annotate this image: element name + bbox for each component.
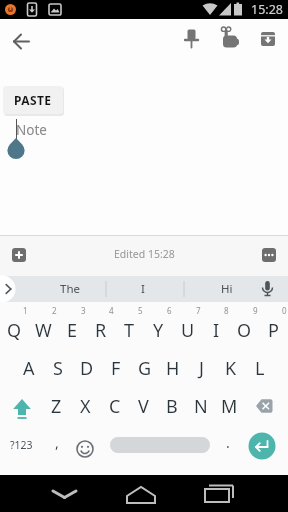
staticText: 15:28 xyxy=(251,1,283,18)
button[interactable] xyxy=(71,426,99,464)
staticText: K xyxy=(225,356,237,381)
button[interactable]: Z xyxy=(42,387,71,425)
button[interactable]: X xyxy=(71,387,100,425)
staticText: X xyxy=(80,394,91,419)
button[interactable]: Hi xyxy=(197,276,257,302)
button[interactable]: J xyxy=(187,349,216,387)
staticText: 9 xyxy=(253,305,258,315)
staticText: Note xyxy=(16,121,47,139)
button[interactable]: The xyxy=(40,276,100,302)
staticText: The xyxy=(60,281,80,297)
button[interactable] xyxy=(117,475,165,512)
staticText: Hi xyxy=(221,281,233,297)
staticText: A xyxy=(23,356,35,381)
button[interactable] xyxy=(110,437,210,453)
staticText: 8 xyxy=(224,305,229,315)
staticText: U xyxy=(181,318,195,343)
staticText: T xyxy=(124,318,135,343)
button[interactable] xyxy=(254,25,282,53)
staticText: Y xyxy=(153,318,164,343)
button[interactable]: G xyxy=(130,349,159,387)
staticText: I xyxy=(213,318,220,343)
button[interactable]: Q xyxy=(0,311,29,349)
staticText: N xyxy=(194,394,208,419)
staticText: C xyxy=(109,394,121,419)
button[interactable]: S xyxy=(43,349,72,387)
staticText: V xyxy=(138,394,149,419)
button[interactable]: M xyxy=(215,387,244,425)
button[interactable] xyxy=(262,248,276,262)
button[interactable] xyxy=(0,387,43,425)
button[interactable]: I xyxy=(202,311,231,349)
button[interactable]: U xyxy=(173,311,202,349)
button[interactable] xyxy=(12,248,26,262)
button[interactable]: A xyxy=(14,349,43,387)
staticText: , xyxy=(55,433,59,452)
button[interactable] xyxy=(245,387,288,425)
button[interactable]: ?123 xyxy=(0,426,43,464)
staticText: P xyxy=(268,318,279,343)
staticText: H xyxy=(166,356,180,381)
staticText: 7 xyxy=(196,305,201,315)
staticText: ?123 xyxy=(10,438,33,452)
button[interactable]: I xyxy=(113,276,173,302)
button[interactable] xyxy=(248,432,276,460)
staticText: M xyxy=(221,394,238,419)
staticText: W xyxy=(35,318,52,343)
staticText: 1 xyxy=(23,305,28,315)
button[interactable]: PASTE xyxy=(3,86,63,114)
staticText: I xyxy=(141,281,145,297)
staticText: 6 xyxy=(167,305,172,315)
staticText: . xyxy=(226,433,230,452)
button[interactable]: E xyxy=(58,311,87,349)
button[interactable]: O xyxy=(230,311,259,349)
button[interactable]: K xyxy=(216,349,245,387)
staticText: G xyxy=(138,356,152,381)
staticText: 4 xyxy=(109,305,114,315)
button[interactable]: . xyxy=(214,423,242,461)
button[interactable]: T xyxy=(115,311,144,349)
button[interactable]: F xyxy=(101,349,130,387)
staticText: Edited 15:28 xyxy=(114,247,175,261)
staticText: D xyxy=(80,356,94,381)
button[interactable]: P xyxy=(259,311,288,349)
button[interactable]: V xyxy=(129,387,158,425)
button[interactable] xyxy=(193,475,241,512)
button[interactable]: H xyxy=(158,349,187,387)
staticText: 2 xyxy=(52,305,57,315)
staticText: Z xyxy=(51,394,62,419)
staticText: S xyxy=(53,356,63,381)
button[interactable]: W xyxy=(29,311,58,349)
staticText: Q xyxy=(7,318,22,343)
button[interactable]: Y xyxy=(144,311,173,349)
button[interactable]: R xyxy=(86,311,115,349)
staticText: L xyxy=(255,356,265,381)
staticText: 5 xyxy=(138,305,143,315)
button[interactable] xyxy=(40,475,88,512)
staticText: J xyxy=(199,356,204,381)
staticText: E xyxy=(67,318,78,343)
staticText: R xyxy=(95,318,107,343)
staticText: O xyxy=(237,318,252,343)
staticText: B xyxy=(166,394,178,419)
staticText: PASTE xyxy=(14,92,52,108)
staticText: 3 xyxy=(81,305,86,315)
button[interactable] xyxy=(8,28,36,56)
button[interactable]: C xyxy=(100,387,129,425)
button[interactable]: B xyxy=(157,387,186,425)
button[interactable] xyxy=(217,25,244,53)
button[interactable]: L xyxy=(245,349,274,387)
button[interactable]: N xyxy=(186,387,215,425)
button[interactable]: D xyxy=(72,349,101,387)
button[interactable]: , xyxy=(43,423,71,461)
staticText: 0 xyxy=(282,305,287,315)
button[interactable] xyxy=(178,25,205,53)
staticText: F xyxy=(111,356,121,381)
